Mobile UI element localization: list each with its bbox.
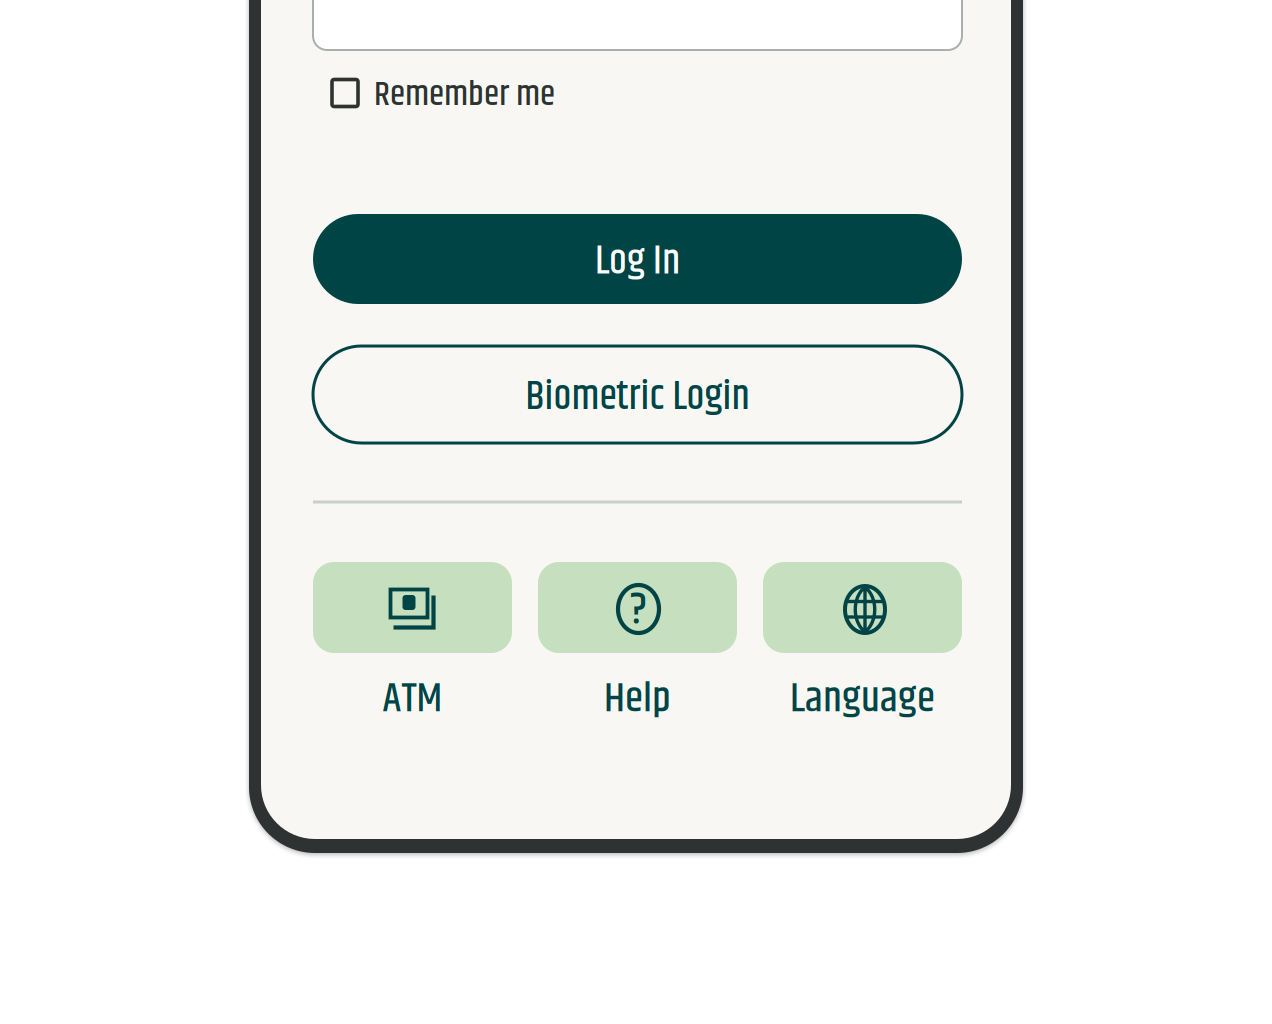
staticText: Remember me [374, 68, 555, 121]
staticText: Language [790, 668, 935, 731]
button[interactable]: Password [313, 0, 962, 50]
button[interactable]: Log In [313, 214, 962, 304]
button[interactable]: Biometric Login [313, 346, 962, 443]
button[interactable]: Language [763, 562, 962, 741]
staticText: ATM [382, 668, 442, 731]
staticText: Help [604, 668, 671, 731]
button[interactable]: ? [538, 562, 737, 741]
staticText: Biometric Login [525, 367, 749, 428]
staticText: Log In [595, 231, 680, 293]
button[interactable]: ATM [313, 562, 512, 741]
staticText: ? [629, 576, 647, 645]
button[interactable]: Remember me [332, 71, 592, 115]
